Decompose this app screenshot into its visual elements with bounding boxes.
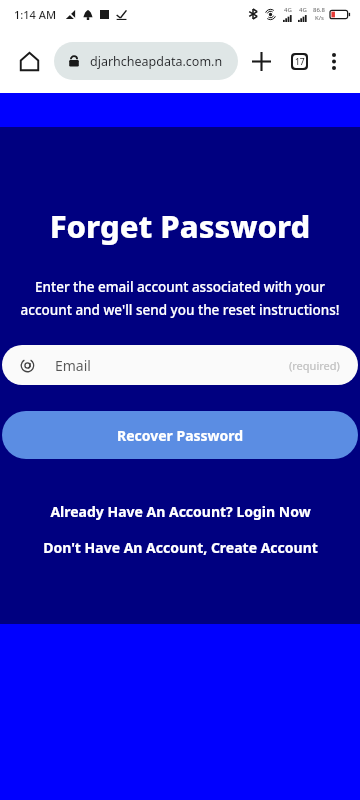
staticText: Recover Password	[117, 426, 244, 445]
button[interactable]: djarhcheapdata.com.ng/mobi	[54, 42, 238, 80]
staticText: djarhcheapdata.com.ng/mobi	[90, 53, 224, 70]
staticText: 86.8	[313, 6, 325, 14]
staticText: 17	[295, 56, 305, 68]
staticText: K/s	[315, 14, 324, 22]
button[interactable]: More options	[318, 45, 350, 77]
staticText: (required)	[289, 358, 340, 373]
staticText: 4G	[284, 6, 292, 14]
button[interactable]: Tabs: 17	[280, 42, 318, 80]
staticText: Don't Have An Account, Create Account	[43, 538, 318, 557]
button[interactable]: Email	[2, 345, 358, 385]
staticText: Email	[55, 356, 91, 375]
staticText: Forget Password	[0, 205, 360, 247]
staticText: 1:14 AM	[14, 7, 57, 22]
button[interactable]: Don't Have An Account, Create Account	[0, 538, 360, 557]
button[interactable]: Recover Password	[2, 411, 358, 459]
staticText: 4G	[299, 6, 307, 14]
button[interactable]: New tab	[242, 42, 280, 80]
staticText: Enter the email account associated with …	[12, 278, 348, 319]
button[interactable]: Home	[10, 42, 48, 80]
button[interactable]: Already Have An Account? Login Now	[0, 502, 360, 521]
staticText: Already Have An Account? Login Now	[50, 502, 311, 521]
